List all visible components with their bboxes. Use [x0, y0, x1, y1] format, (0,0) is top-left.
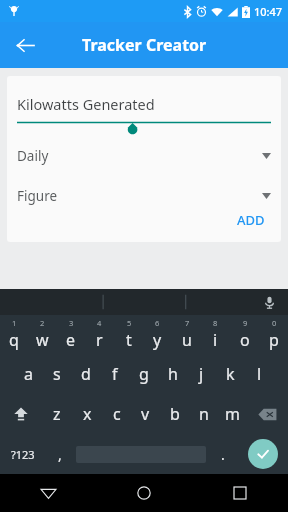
button[interactable]: 9: [230, 315, 259, 354]
staticText: p: [269, 329, 279, 351]
staticText: 3: [69, 318, 74, 328]
button[interactable]: Shift: [0, 394, 42, 434]
button[interactable]: c: [102, 394, 131, 434]
button[interactable]: Back: [8, 28, 42, 62]
staticText: .: [221, 445, 225, 464]
staticText: g: [139, 363, 149, 385]
staticText: n: [199, 403, 209, 425]
staticText: m: [225, 403, 240, 425]
button[interactable]: f: [100, 354, 129, 394]
button[interactable]: b: [160, 394, 189, 434]
staticText: d: [81, 363, 91, 385]
staticText: 9: [243, 318, 248, 328]
button[interactable]: 8: [201, 315, 230, 354]
staticText: v: [141, 403, 150, 425]
button[interactable]: h: [158, 354, 187, 394]
staticText: 6: [155, 318, 160, 328]
button[interactable]: Voice input: [258, 291, 280, 313]
staticText: 2: [40, 318, 45, 328]
staticText: c: [113, 403, 121, 425]
button[interactable]: 2: [28, 315, 56, 354]
staticText: l: [257, 363, 262, 385]
button[interactable]: v: [131, 394, 160, 434]
button[interactable]: 5: [114, 315, 143, 354]
button[interactable]: Kilowatts Generated: [17, 94, 155, 114]
staticText: i: [213, 329, 218, 351]
button[interactable]: 7: [172, 315, 201, 354]
staticText: t: [126, 329, 132, 351]
staticText: h: [168, 363, 178, 385]
staticText: x: [83, 403, 92, 425]
button[interactable]: Back: [0, 474, 96, 512]
staticText: 8: [213, 318, 218, 328]
staticText: ADD: [237, 211, 265, 229]
staticText: Tracker Creator: [82, 34, 207, 56]
button[interactable]: Recents: [192, 474, 288, 512]
staticText: r: [96, 329, 103, 351]
button[interactable]: Backspace: [247, 394, 288, 434]
button[interactable]: ?123: [0, 434, 45, 474]
staticText: u: [182, 329, 192, 351]
staticText: 0: [272, 318, 277, 328]
button[interactable]: m: [218, 394, 247, 434]
button[interactable]: a: [14, 354, 42, 394]
staticText: Figure: [17, 187, 58, 205]
button[interactable]: l: [245, 354, 274, 394]
staticText: w: [36, 329, 49, 351]
button[interactable]: 4: [85, 315, 114, 354]
button[interactable]: .: [208, 434, 237, 474]
button[interactable]: d: [71, 354, 100, 394]
staticText: f: [112, 363, 118, 385]
button[interactable]: z: [42, 394, 72, 434]
staticText: ?123: [11, 447, 35, 462]
staticText: 7: [185, 318, 190, 328]
button[interactable]: 0: [259, 315, 288, 354]
button[interactable]: 1: [0, 315, 28, 354]
staticText: 10:47: [254, 4, 283, 19]
staticText: y: [153, 329, 162, 351]
staticText: k: [226, 363, 235, 385]
staticText: b: [170, 403, 180, 425]
button[interactable]: n: [189, 394, 218, 434]
staticText: ,: [58, 445, 62, 464]
button[interactable]: g: [129, 354, 158, 394]
button[interactable]: 6: [143, 315, 172, 354]
button[interactable]: 3: [56, 315, 85, 354]
button[interactable]: Enter: [237, 434, 288, 474]
button[interactable]: ,: [45, 434, 74, 474]
button[interactable]: Space: [74, 434, 208, 474]
staticText: s: [53, 363, 61, 385]
button[interactable]: Daily: [17, 147, 271, 165]
staticText: z: [53, 403, 61, 425]
button[interactable]: ADD: [231, 205, 271, 235]
button[interactable]: Figure: [17, 187, 271, 205]
button[interactable]: s: [42, 354, 71, 394]
staticText: Daily: [17, 147, 49, 165]
button[interactable]: j: [187, 354, 216, 394]
staticText: e: [66, 329, 76, 351]
button[interactable]: x: [72, 394, 102, 434]
staticText: a: [24, 363, 33, 385]
staticText: q: [9, 329, 19, 351]
staticText: 4: [97, 318, 102, 328]
button[interactable]: k: [216, 354, 245, 394]
staticText: o: [240, 329, 250, 351]
staticText: 1: [12, 318, 17, 328]
button[interactable]: Home: [96, 474, 192, 512]
staticText: 5: [127, 318, 132, 328]
staticText: j: [199, 363, 204, 385]
